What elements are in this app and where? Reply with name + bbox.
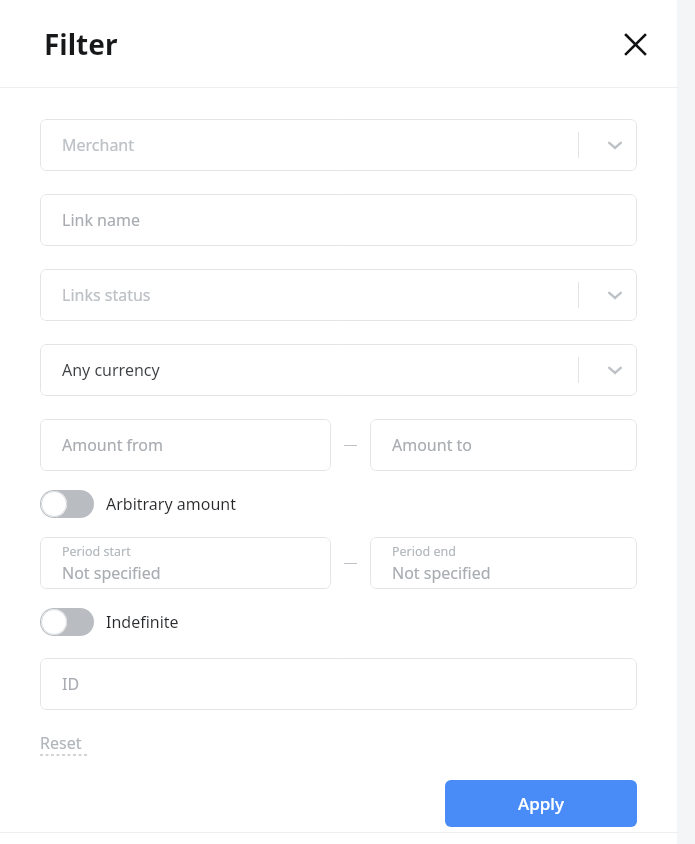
staticText: Not specified <box>62 562 161 584</box>
staticText: Merchant <box>62 134 135 156</box>
staticText: Period start <box>62 543 131 560</box>
staticText: Reset <box>40 732 82 754</box>
button[interactable]: ID <box>40 658 637 710</box>
staticText: Link name <box>62 209 140 231</box>
staticText: Filter <box>44 25 118 63</box>
staticText: Apply <box>518 792 564 815</box>
button[interactable]: Any currency <box>40 344 637 396</box>
button[interactable]: Arbitrary amount <box>40 490 236 518</box>
staticText: Arbitrary amount <box>106 493 236 515</box>
staticText: Links status <box>62 284 151 306</box>
staticText: Amount from <box>62 434 164 456</box>
button[interactable]: Period end <box>370 537 637 589</box>
staticText: ID <box>62 673 80 695</box>
button[interactable]: Link name <box>40 194 637 246</box>
button[interactable]: Amount from <box>40 419 331 471</box>
staticText: Indefinite <box>106 611 179 633</box>
staticText: Any currency <box>62 359 160 381</box>
button[interactable]: Links status <box>40 269 637 321</box>
staticText: Period end <box>392 543 456 560</box>
staticText: Amount to <box>392 434 473 456</box>
button[interactable]: Apply <box>445 780 637 827</box>
button[interactable]: Reset <box>40 732 88 757</box>
button[interactable]: Merchant <box>40 119 637 171</box>
button[interactable]: Amount to <box>370 419 637 471</box>
button[interactable]: Indefinite <box>40 608 179 636</box>
staticText: Not specified <box>392 562 491 584</box>
button[interactable]: Period start <box>40 537 331 589</box>
button[interactable]: Close <box>615 24 655 64</box>
